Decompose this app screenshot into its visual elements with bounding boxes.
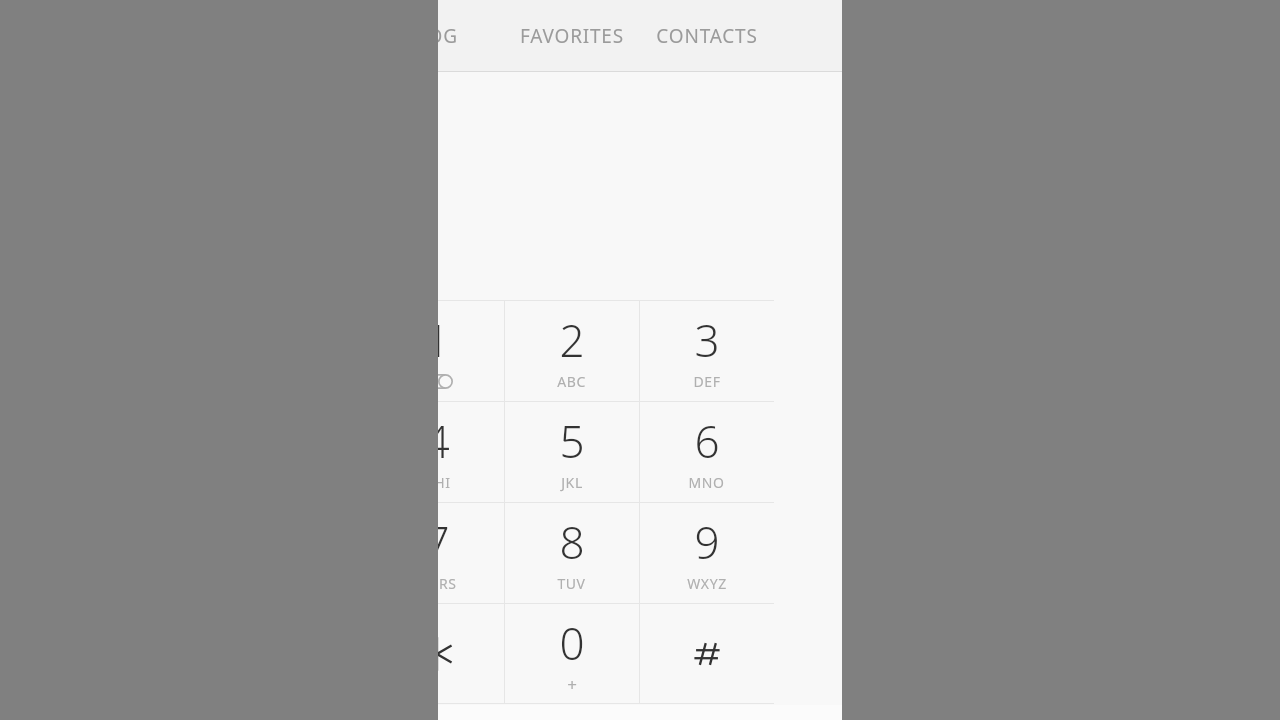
- staticText: PQRS: [438, 574, 457, 593]
- staticText: MNO: [688, 473, 725, 492]
- button[interactable]: 9: [639, 502, 774, 603]
- staticText: WXYZ: [687, 574, 727, 593]
- staticText: 2: [559, 310, 585, 370]
- staticText: 5: [559, 411, 585, 471]
- button[interactable]: 6: [639, 401, 774, 502]
- staticText: 8: [559, 512, 585, 572]
- button[interactable]: FAVORITES: [504, 0, 639, 72]
- button[interactable]: 3: [639, 300, 774, 401]
- staticText: 6: [694, 411, 720, 471]
- staticText: 9: [694, 512, 720, 572]
- button[interactable]: CONTACTS: [639, 0, 774, 72]
- staticText: LOG: [438, 23, 458, 49]
- button[interactable]: 8: [504, 502, 639, 603]
- staticText: 1: [438, 310, 450, 370]
- button[interactable]: LOG: [438, 0, 504, 72]
- staticText: TUV: [557, 574, 586, 593]
- button[interactable]: 4: [438, 401, 504, 502]
- staticText: FAVORITES: [520, 23, 624, 49]
- button[interactable]: 7: [438, 502, 504, 603]
- staticText: 0: [559, 613, 585, 673]
- staticText: 4: [438, 411, 450, 471]
- button[interactable]: Star: [438, 603, 504, 704]
- staticText: DEF: [693, 372, 721, 391]
- button[interactable]: 2: [504, 300, 639, 401]
- staticText: 7: [438, 512, 450, 572]
- staticText: +: [567, 673, 577, 695]
- button[interactable]: 5: [504, 401, 639, 502]
- staticText: ABC: [557, 372, 586, 391]
- staticText: JKL: [561, 473, 583, 492]
- button[interactable]: Pound: [639, 603, 774, 704]
- button[interactable]: 0: [504, 603, 639, 704]
- staticText: GHI: [438, 473, 451, 492]
- button[interactable]: 1 Voicemail: [438, 300, 504, 401]
- staticText: 3: [694, 310, 720, 370]
- staticText: CONTACTS: [656, 23, 758, 49]
